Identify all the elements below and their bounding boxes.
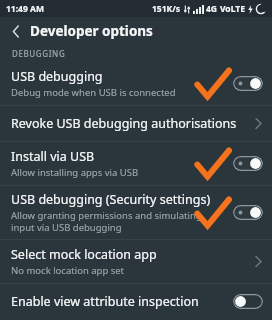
button[interactable]: Enable view attribute inspection (0, 284, 272, 319)
button[interactable]: USB debugging (0, 62, 272, 105)
button[interactable]: Back (6, 21, 26, 41)
staticText: USB debugging (11, 68, 103, 85)
staticText: 11:49 AM (6, 3, 44, 15)
button[interactable]: Revoke USB debugging authorisations (0, 106, 272, 141)
staticText: VoLTE (220, 3, 245, 15)
other: Open (254, 117, 263, 130)
staticText: Developer options (30, 22, 153, 40)
staticText: No mock location app set (11, 264, 125, 277)
button[interactable]: Toggle on (233, 76, 263, 91)
button[interactable]: Toggle off (233, 294, 263, 309)
staticText: Select mock location app (11, 246, 157, 263)
staticText: Revoke USB debugging authorisations (11, 115, 237, 132)
staticText: Install via USB (11, 148, 95, 165)
button[interactable]: Toggle on (233, 205, 263, 220)
staticText: DEBUGGING (12, 48, 66, 59)
staticText: 151K/s (152, 3, 181, 15)
staticText: Allow installing apps via USB (11, 166, 139, 179)
staticText: USB debugging (Security settings) (11, 191, 211, 208)
other: Open (254, 255, 263, 268)
staticText: Debug mode when USB is connected (11, 86, 176, 99)
staticText: Allow granting permissions and simulatin… (11, 209, 202, 234)
button[interactable]: Select mock location app (0, 240, 272, 283)
button[interactable]: Install via USB (0, 142, 272, 185)
button[interactable]: Toggle on (233, 156, 263, 171)
staticText: 4G (206, 3, 218, 15)
button[interactable]: USB debugging (Security settings) (0, 186, 272, 239)
staticText: Enable view attribute inspection (11, 293, 199, 310)
